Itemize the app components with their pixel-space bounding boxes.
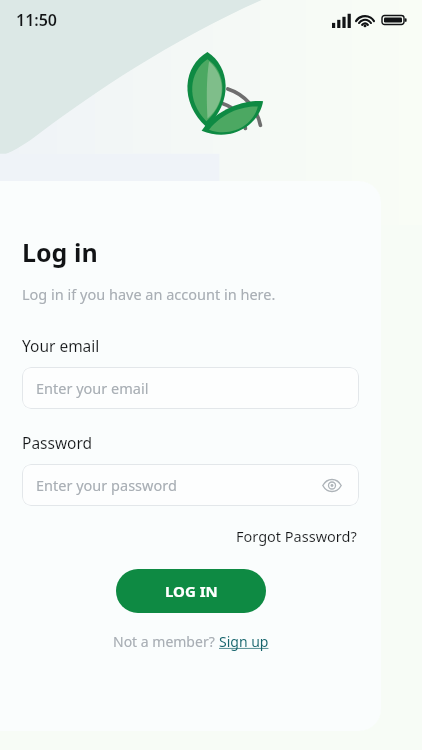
staticText: LOG IN — [165, 581, 218, 601]
button[interactable]: LOG IN — [116, 569, 266, 613]
staticText: Forgot Password? — [236, 526, 357, 546]
staticText: 11:50 — [16, 9, 58, 31]
button[interactable]: Forgot Password? — [234, 524, 359, 548]
staticText: Sign up — [219, 632, 269, 651]
button[interactable]: Sign up — [219, 632, 269, 651]
staticText: Your email — [22, 335, 100, 356]
staticText: Log in if you have an account in here. — [22, 284, 276, 304]
staticText: Password — [22, 432, 93, 453]
button[interactable]: Enter your password — [22, 464, 359, 506]
staticText: Enter your password — [36, 475, 177, 495]
button[interactable]: Show password — [319, 472, 345, 498]
staticText: Enter your email — [36, 378, 149, 398]
button[interactable]: Enter your email — [22, 367, 359, 409]
staticText: Log in — [22, 235, 98, 269]
staticText: Not a member? — [113, 632, 219, 651]
